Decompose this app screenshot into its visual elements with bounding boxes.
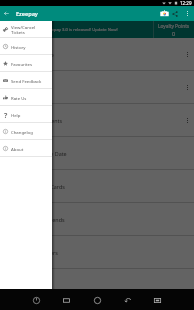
button[interactable]: Power [28, 292, 44, 308]
button[interactable]: Screenshot [149, 292, 165, 308]
button[interactable]: Journey Date [0, 137, 194, 170]
button[interactable]: Reward Cards [0, 170, 194, 203]
staticText: Recharge [30, 51, 54, 58]
button[interactable]: About [0, 140, 52, 157]
staticText: Favourites [11, 61, 32, 67]
button[interactable]: Offers [0, 236, 194, 269]
staticText: Offers [42, 249, 58, 256]
staticText: Rate Us [11, 95, 27, 101]
staticText: 12:29 [180, 0, 192, 6]
staticText: History [11, 44, 26, 50]
button[interactable]: Home [89, 292, 105, 308]
button[interactable]: Bill Payments [0, 104, 194, 137]
button[interactable]: Share [168, 7, 181, 20]
button[interactable]: DTH [0, 71, 194, 104]
staticText: Reward Cards [30, 183, 65, 190]
button[interactable]: Changelog [0, 123, 52, 140]
staticText: Changelog [11, 129, 33, 135]
staticText: 0 [172, 30, 176, 37]
button[interactable]: Rate Us [0, 89, 52, 106]
button[interactable]: Video tutorial [155, 7, 168, 20]
button[interactable]: Back [0, 7, 13, 20]
button[interactable]: Send Feedback [0, 72, 52, 89]
button[interactable]: View/Cancel Tickets [0, 21, 52, 38]
staticText: View/Cancel Tickets [11, 24, 36, 35]
staticText: Loyalty Points [158, 23, 190, 30]
staticText: Journey Date [34, 150, 67, 157]
button[interactable]: Wallet [0, 269, 194, 302]
staticText: Help [11, 112, 21, 118]
staticText: About [11, 146, 24, 152]
button[interactable]: Back [119, 292, 135, 308]
button[interactable]: ? [0, 106, 52, 123]
button[interactable]: Recharge [0, 38, 194, 71]
staticText: ? [4, 111, 8, 119]
staticText: Ezeepay [16, 10, 38, 18]
button[interactable]: Refer Friends [0, 203, 194, 236]
button[interactable]: More options [181, 6, 194, 21]
staticText: DTH [37, 84, 48, 91]
staticText: Send Feedback [11, 78, 42, 84]
staticText: Bill Payments [28, 117, 63, 124]
staticText: Refer Friends [31, 216, 65, 223]
staticText: New ezeepay 3.0 is released! Update Now! [35, 27, 118, 33]
button[interactable]: Favourites [0, 55, 52, 72]
button[interactable]: Recent apps [58, 292, 74, 308]
button[interactable]: History [0, 38, 52, 55]
